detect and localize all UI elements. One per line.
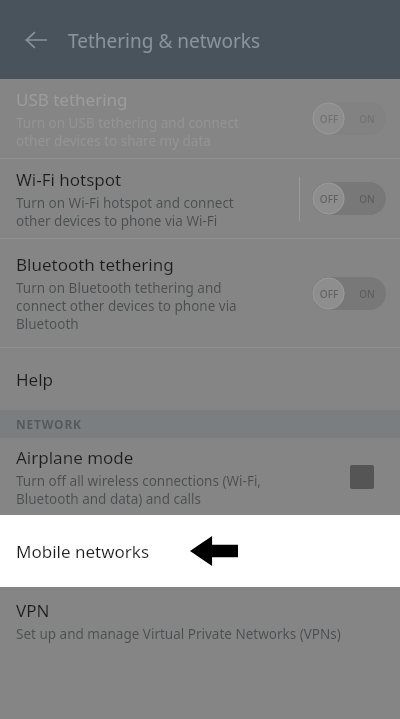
staticText: Wi-Fi hotspot: [16, 168, 122, 191]
button[interactable]: USB tethering: [0, 79, 400, 158]
staticText: Turn on Wi-Fi hotspot and connect other …: [16, 194, 234, 230]
staticText: OFF: [319, 112, 339, 126]
staticText: Turn on Bluetooth tethering and connect …: [16, 279, 237, 333]
button[interactable]: VPN: [0, 587, 400, 719]
button[interactable]: Bluetooth tethering switch, off: [312, 277, 386, 310]
staticText: Set up and manage Virtual Private Networ…: [16, 625, 341, 643]
button[interactable]: Back: [15, 19, 57, 61]
button[interactable]: Wi-Fi hotspot switch, off: [312, 182, 386, 215]
button[interactable]: Wi-Fi hotspot: [0, 159, 400, 238]
staticText: VPN: [16, 599, 50, 622]
staticText: ON: [357, 112, 377, 126]
button[interactable]: Airplane mode: [0, 438, 400, 515]
staticText: Bluetooth tethering: [16, 253, 174, 276]
staticText: Mobile networks: [16, 540, 150, 563]
button[interactable]: Bluetooth tethering: [0, 239, 400, 347]
staticText: ON: [357, 192, 377, 206]
staticText: Airplane mode: [16, 446, 134, 469]
button[interactable]: Mobile networks: [0, 515, 400, 587]
staticText: NETWORK: [16, 416, 82, 432]
staticText: USB tethering: [16, 88, 128, 111]
staticText: OFF: [319, 192, 339, 206]
staticText: Help: [16, 368, 54, 391]
button[interactable]: USB tethering switch, off: [312, 102, 386, 135]
staticText: ON: [357, 287, 377, 301]
staticText: Tethering & networks: [68, 28, 261, 54]
staticText: Turn on USB tethering and connect other …: [16, 114, 239, 150]
staticText: Turn off all wireless connections (Wi-Fi…: [16, 472, 261, 508]
button[interactable]: Help: [0, 348, 400, 410]
staticText: OFF: [319, 287, 339, 301]
